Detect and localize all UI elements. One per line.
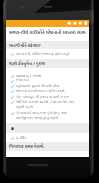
staticText: રેશનકાર્ડ [16, 78, 30, 82]
staticText: બેંક પાસબુક ની પ્રથમ પાનાની નકલ [16, 94, 69, 99]
button[interactable]: Application fee [6, 123, 89, 133]
staticText: રૂ. 20/- [16, 135, 27, 140]
staticText: ઉંમરનો દાખલો જન્મ તારીખ સાથે [16, 88, 65, 93]
button[interactable]: સરકારની, સીમિત ઉત્તરનું મૂલ્ય નહીં. [6, 51, 89, 56]
staticText: જાતિનો દાખલો અ.જા. / અ.જ.જા. માટે જરૂરી … [16, 99, 75, 109]
button[interactable]: વિગતવાર સમજ મેળવો. [6, 142, 89, 151]
button[interactable]: બેંક પાસબુક ની પ્રથમ પાનાની નકલ [6, 94, 89, 99]
staticText: શ્રવણ-તીર્થ યાત્રિકોને યોજનાનો ધ્યાનમાં … [9, 29, 86, 37]
button[interactable]: ખાનગી કોને કહેવાય? [6, 41, 89, 49]
staticText: જરૂરી ડોક્યુમેન્ટ / પુરાવા [9, 60, 87, 67]
staticText: સરકારની, સીમિત ઉત્તરનું મૂલ્ય નહીં. [16, 51, 71, 56]
staticText: વિગતવાર સમજ મેળવો. [9, 143, 87, 150]
staticText: બે પાસપોર્ટ સાઇઝના ફોટોગ્રાફ તથા અરજીપત્… [16, 110, 67, 120]
button[interactable]: રૂ. 20/- [6, 135, 89, 140]
staticText: રહેઠાણનો પુરાવો વીજળી બીલ [16, 83, 60, 88]
staticText: આધારકાર્ડ ઝેરોક્ષ [16, 73, 42, 78]
staticText: ખાનગી કોને કહેવાય? [9, 42, 87, 49]
button[interactable]: રહેઠાણનો પુરાવો વીજળી બીલ [6, 83, 89, 88]
button[interactable]: રેશનકાર્ડ [6, 78, 89, 83]
button[interactable]: જાતિનો દાખલો અ.જા. / અ.જ.જા. માટે જરૂરી … [6, 99, 89, 109]
button[interactable]: આધારકાર્ડ ઝેરોક્ષ [6, 73, 89, 78]
button[interactable]: જરૂરી ડોક્યુમેન્ટ / પુરાવા [6, 59, 89, 68]
button[interactable]: બે પાસપોર્ટ સાઇઝના ફોટોગ્રાફ તથા અરજીપત્… [6, 110, 89, 120]
button[interactable]: ઉંમરનો દાખલો જન્મ તારીખ સાથે [6, 88, 89, 93]
